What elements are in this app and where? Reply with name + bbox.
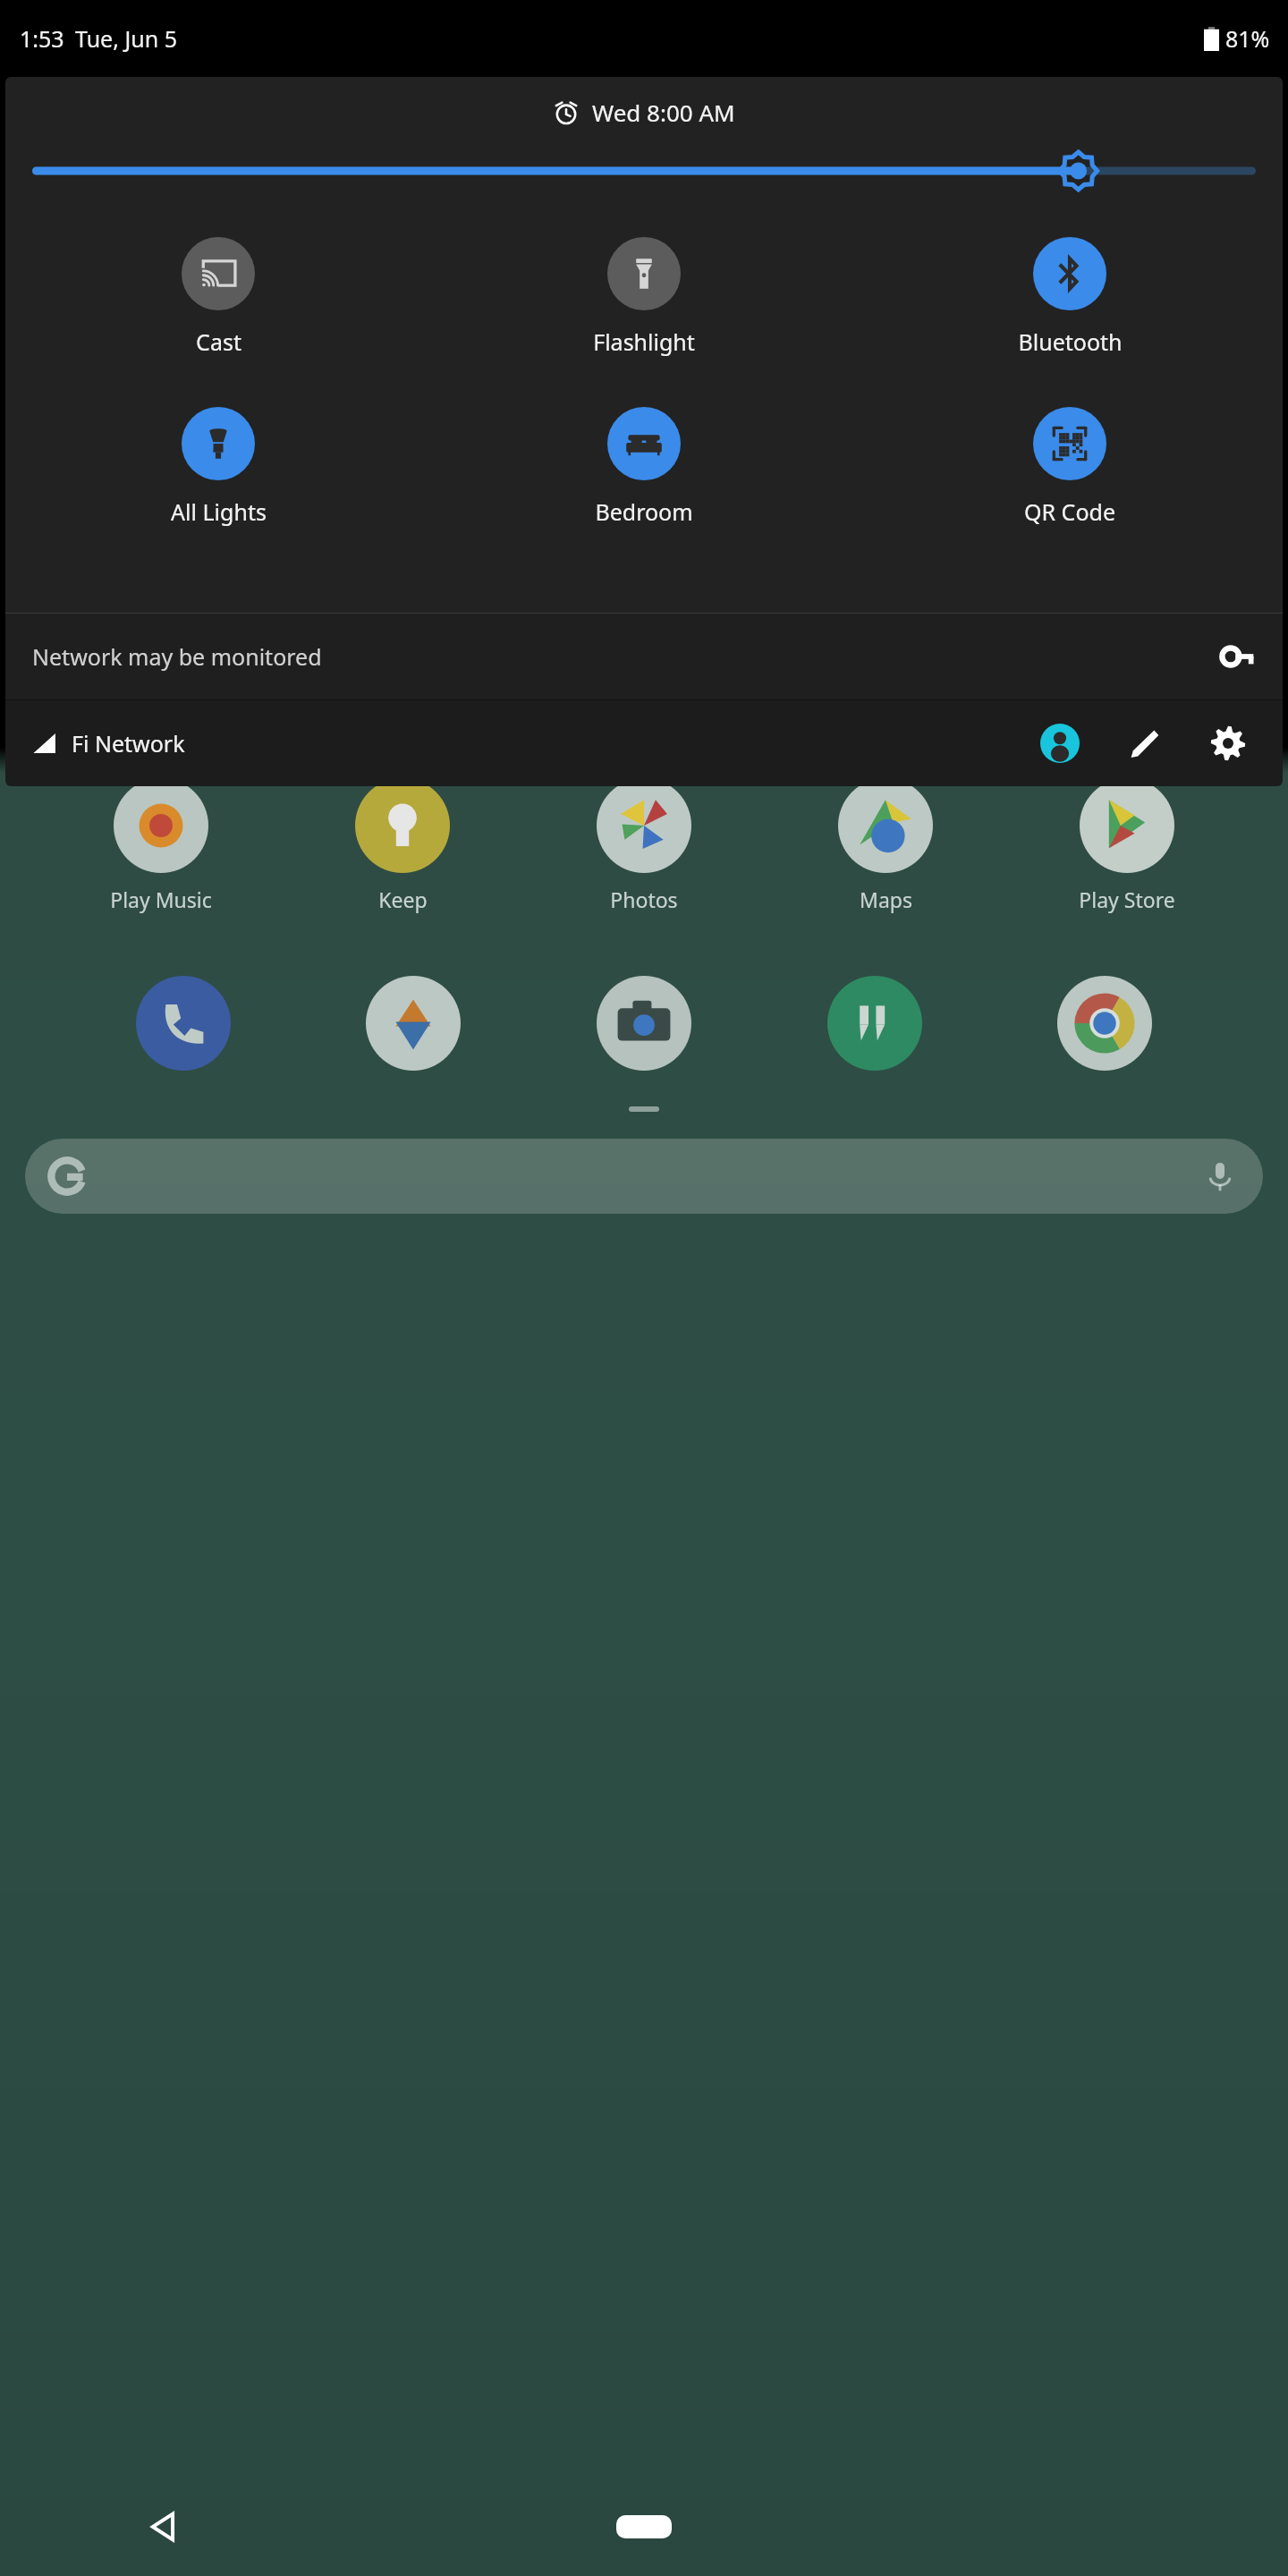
button[interactable] [25,1139,1263,1214]
button[interactable]: Camera [597,976,691,1071]
button[interactable]: Fi Network [29,728,185,758]
button[interactable]: Network may be monitored [5,614,1283,699]
button[interactable]: Hangouts [827,976,922,1071]
button[interactable]: Play Store [1046,778,1207,913]
staticText: Network may be monitored [32,641,322,672]
staticText: Tue, Jun 5 [75,23,177,54]
staticText: All Lights [171,496,267,527]
button[interactable]: QR Code [857,407,1283,527]
staticText: Wed 8:00 AM [592,97,735,128]
button[interactable]: Alarm [5,97,1283,128]
staticText: QR Code [1024,496,1115,527]
staticText: Keep [378,885,428,913]
staticText: Fi Network [72,728,185,758]
staticText: Bluetooth [1018,326,1123,357]
staticText: Play Store [1079,885,1175,913]
button[interactable]: Home [599,2502,689,2552]
button[interactable]: Play Music [80,778,241,913]
button[interactable]: All Lights [5,407,431,527]
button[interactable]: Bluetooth [857,237,1283,357]
staticText: 81% [1225,23,1270,54]
button[interactable]: Cast [5,237,431,357]
button[interactable]: Brightness [32,144,1256,198]
button[interactable]: Chrome [1057,976,1152,1071]
other: VPN [1222,640,1256,674]
button[interactable]: Edit [1113,712,1175,775]
other: Alarm [553,99,580,126]
button[interactable]: Drive [366,976,461,1071]
staticText: Photos [610,885,678,913]
staticText: Cast [196,326,241,357]
button[interactable]: Back [132,2495,195,2558]
button[interactable]: Phone [136,976,231,1071]
staticText: Maps [860,885,912,913]
staticText: Flashlight [593,326,695,357]
staticText: Bedroom [595,496,693,527]
button[interactable]: Bedroom [431,407,857,527]
button[interactable]: Maps [805,778,966,913]
button[interactable]: User [1029,712,1091,775]
button[interactable]: Photos [563,778,724,913]
staticText: Play Music [110,885,212,913]
button[interactable]: Keep [322,778,483,913]
button[interactable]: Settings [1197,712,1259,775]
staticText: 1:53 [20,23,64,54]
button[interactable]: Flashlight [431,237,857,357]
